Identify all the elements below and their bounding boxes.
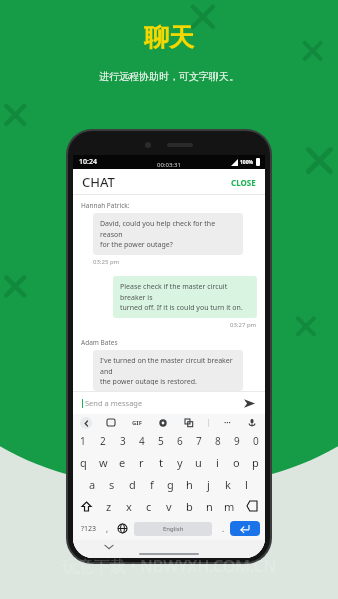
staticText: e bbox=[119, 455, 126, 470]
button[interactable]: b bbox=[179, 495, 199, 517]
button[interactable]: Send bbox=[242, 396, 256, 410]
staticText: , bbox=[106, 523, 109, 534]
button[interactable]: e bbox=[113, 451, 132, 473]
staticText: 玩意下载 • NBWYXH.COM.CN bbox=[62, 555, 277, 577]
staticText: ••• bbox=[224, 419, 231, 427]
button[interactable]: t bbox=[151, 451, 170, 473]
button[interactable]: I've turned on the master circuit breake… bbox=[93, 350, 243, 391]
staticText: Send a message bbox=[85, 398, 143, 408]
staticText: 5 bbox=[158, 434, 164, 448]
button[interactable]: Hide keyboard bbox=[105, 543, 113, 551]
button[interactable]: q bbox=[73, 451, 93, 473]
button[interactable]: f bbox=[142, 473, 161, 495]
button[interactable]: n bbox=[199, 495, 219, 517]
button[interactable]: More bbox=[222, 417, 233, 429]
button[interactable]: j bbox=[199, 473, 218, 495]
staticText: x bbox=[126, 499, 132, 514]
button[interactable]: p bbox=[246, 451, 265, 473]
button[interactable]: 3 bbox=[113, 431, 132, 451]
staticText: b bbox=[186, 499, 193, 514]
button[interactable]: Language bbox=[114, 517, 130, 540]
staticText: l bbox=[245, 477, 248, 492]
button[interactable]: Please check if the master circuit break… bbox=[113, 276, 257, 318]
staticText: Please check if the master circuit break… bbox=[120, 282, 250, 312]
staticText: GIF bbox=[132, 419, 142, 427]
staticText: 进行远程协助时，可文字聊天。 bbox=[99, 70, 239, 83]
button[interactable]: Settings bbox=[157, 417, 169, 429]
staticText: ?123 bbox=[81, 524, 97, 534]
button[interactable]: Enter bbox=[230, 521, 260, 536]
button[interactable]: a bbox=[82, 473, 102, 495]
button[interactable]: c bbox=[139, 495, 159, 517]
staticText: y bbox=[177, 455, 183, 470]
button[interactable]: Period bbox=[216, 517, 230, 540]
button[interactable]: r bbox=[132, 451, 151, 473]
button[interactable]: 4 bbox=[132, 431, 151, 451]
staticText: o bbox=[233, 455, 240, 470]
staticText: Hannah Patrick: bbox=[81, 201, 130, 210]
staticText: k bbox=[225, 477, 231, 492]
button[interactable]: h bbox=[180, 473, 199, 495]
staticText: CHAT bbox=[82, 173, 115, 191]
button[interactable]: 2 bbox=[93, 431, 113, 451]
button[interactable]: Sticker bbox=[105, 417, 117, 429]
button[interactable]: g bbox=[161, 473, 180, 495]
staticText: 8 bbox=[215, 434, 221, 448]
staticText: 3 bbox=[120, 434, 126, 448]
button[interactable]: o bbox=[227, 451, 246, 473]
staticText: 6 bbox=[177, 434, 183, 448]
staticText: w bbox=[99, 455, 108, 470]
button[interactable]: i bbox=[208, 451, 227, 473]
staticText: David, could you help check for the reas… bbox=[100, 219, 236, 249]
button[interactable]: Voice bbox=[246, 417, 258, 429]
button[interactable]: u bbox=[189, 451, 208, 473]
button[interactable]: y bbox=[170, 451, 189, 473]
button[interactable]: z bbox=[99, 495, 119, 517]
button[interactable]: 7 bbox=[189, 431, 208, 451]
staticText: I've turned on the master circuit breake… bbox=[100, 356, 236, 385]
staticText: 4 bbox=[139, 434, 145, 448]
staticText: 100% bbox=[240, 159, 254, 166]
button[interactable]: 1 bbox=[73, 431, 93, 451]
button[interactable]: CLOSE bbox=[222, 173, 265, 192]
staticText: h bbox=[186, 477, 193, 492]
staticText: 聊天 bbox=[144, 22, 194, 53]
button[interactable]: Shift bbox=[73, 495, 99, 517]
staticText: z bbox=[106, 499, 112, 514]
staticText: v bbox=[166, 499, 172, 514]
staticText: i bbox=[216, 455, 219, 470]
button[interactable]: Back bbox=[80, 417, 92, 429]
staticText: t bbox=[159, 455, 163, 470]
button[interactable]: Translate bbox=[183, 417, 195, 429]
staticText: 1 bbox=[80, 434, 86, 448]
staticText: a bbox=[89, 477, 96, 492]
button[interactable]: d bbox=[122, 473, 142, 495]
button[interactable]: k bbox=[218, 473, 237, 495]
staticText: r bbox=[139, 455, 144, 470]
staticText: p bbox=[252, 455, 259, 470]
button[interactable]: 6 bbox=[170, 431, 189, 451]
button[interactable]: GIF bbox=[130, 417, 144, 429]
staticText: 10:24 bbox=[79, 157, 97, 167]
staticText: 00:03:31 bbox=[157, 161, 181, 169]
staticText: f bbox=[150, 477, 154, 492]
button[interactable]: 8 bbox=[208, 431, 227, 451]
button[interactable]: 0 bbox=[246, 431, 265, 451]
button[interactable]: 9 bbox=[227, 431, 246, 451]
staticText: 03:25 pm bbox=[93, 258, 120, 266]
button[interactable]: x bbox=[119, 495, 139, 517]
button[interactable]: l bbox=[237, 473, 256, 495]
staticText: Adam Bates bbox=[81, 338, 118, 347]
button[interactable]: v bbox=[159, 495, 179, 517]
button[interactable]: English bbox=[134, 522, 212, 536]
button[interactable]: Backspace bbox=[239, 495, 265, 517]
button[interactable]: ?123 bbox=[78, 517, 100, 540]
staticText: n bbox=[206, 499, 213, 514]
staticText: 0 bbox=[253, 434, 259, 448]
button[interactable]: m bbox=[219, 495, 239, 517]
button[interactable]: s bbox=[102, 473, 122, 495]
button[interactable]: w bbox=[93, 451, 113, 473]
button[interactable]: 5 bbox=[151, 431, 170, 451]
button[interactable]: Comma bbox=[100, 517, 114, 540]
button[interactable]: David, could you help check for the reas… bbox=[93, 213, 243, 255]
